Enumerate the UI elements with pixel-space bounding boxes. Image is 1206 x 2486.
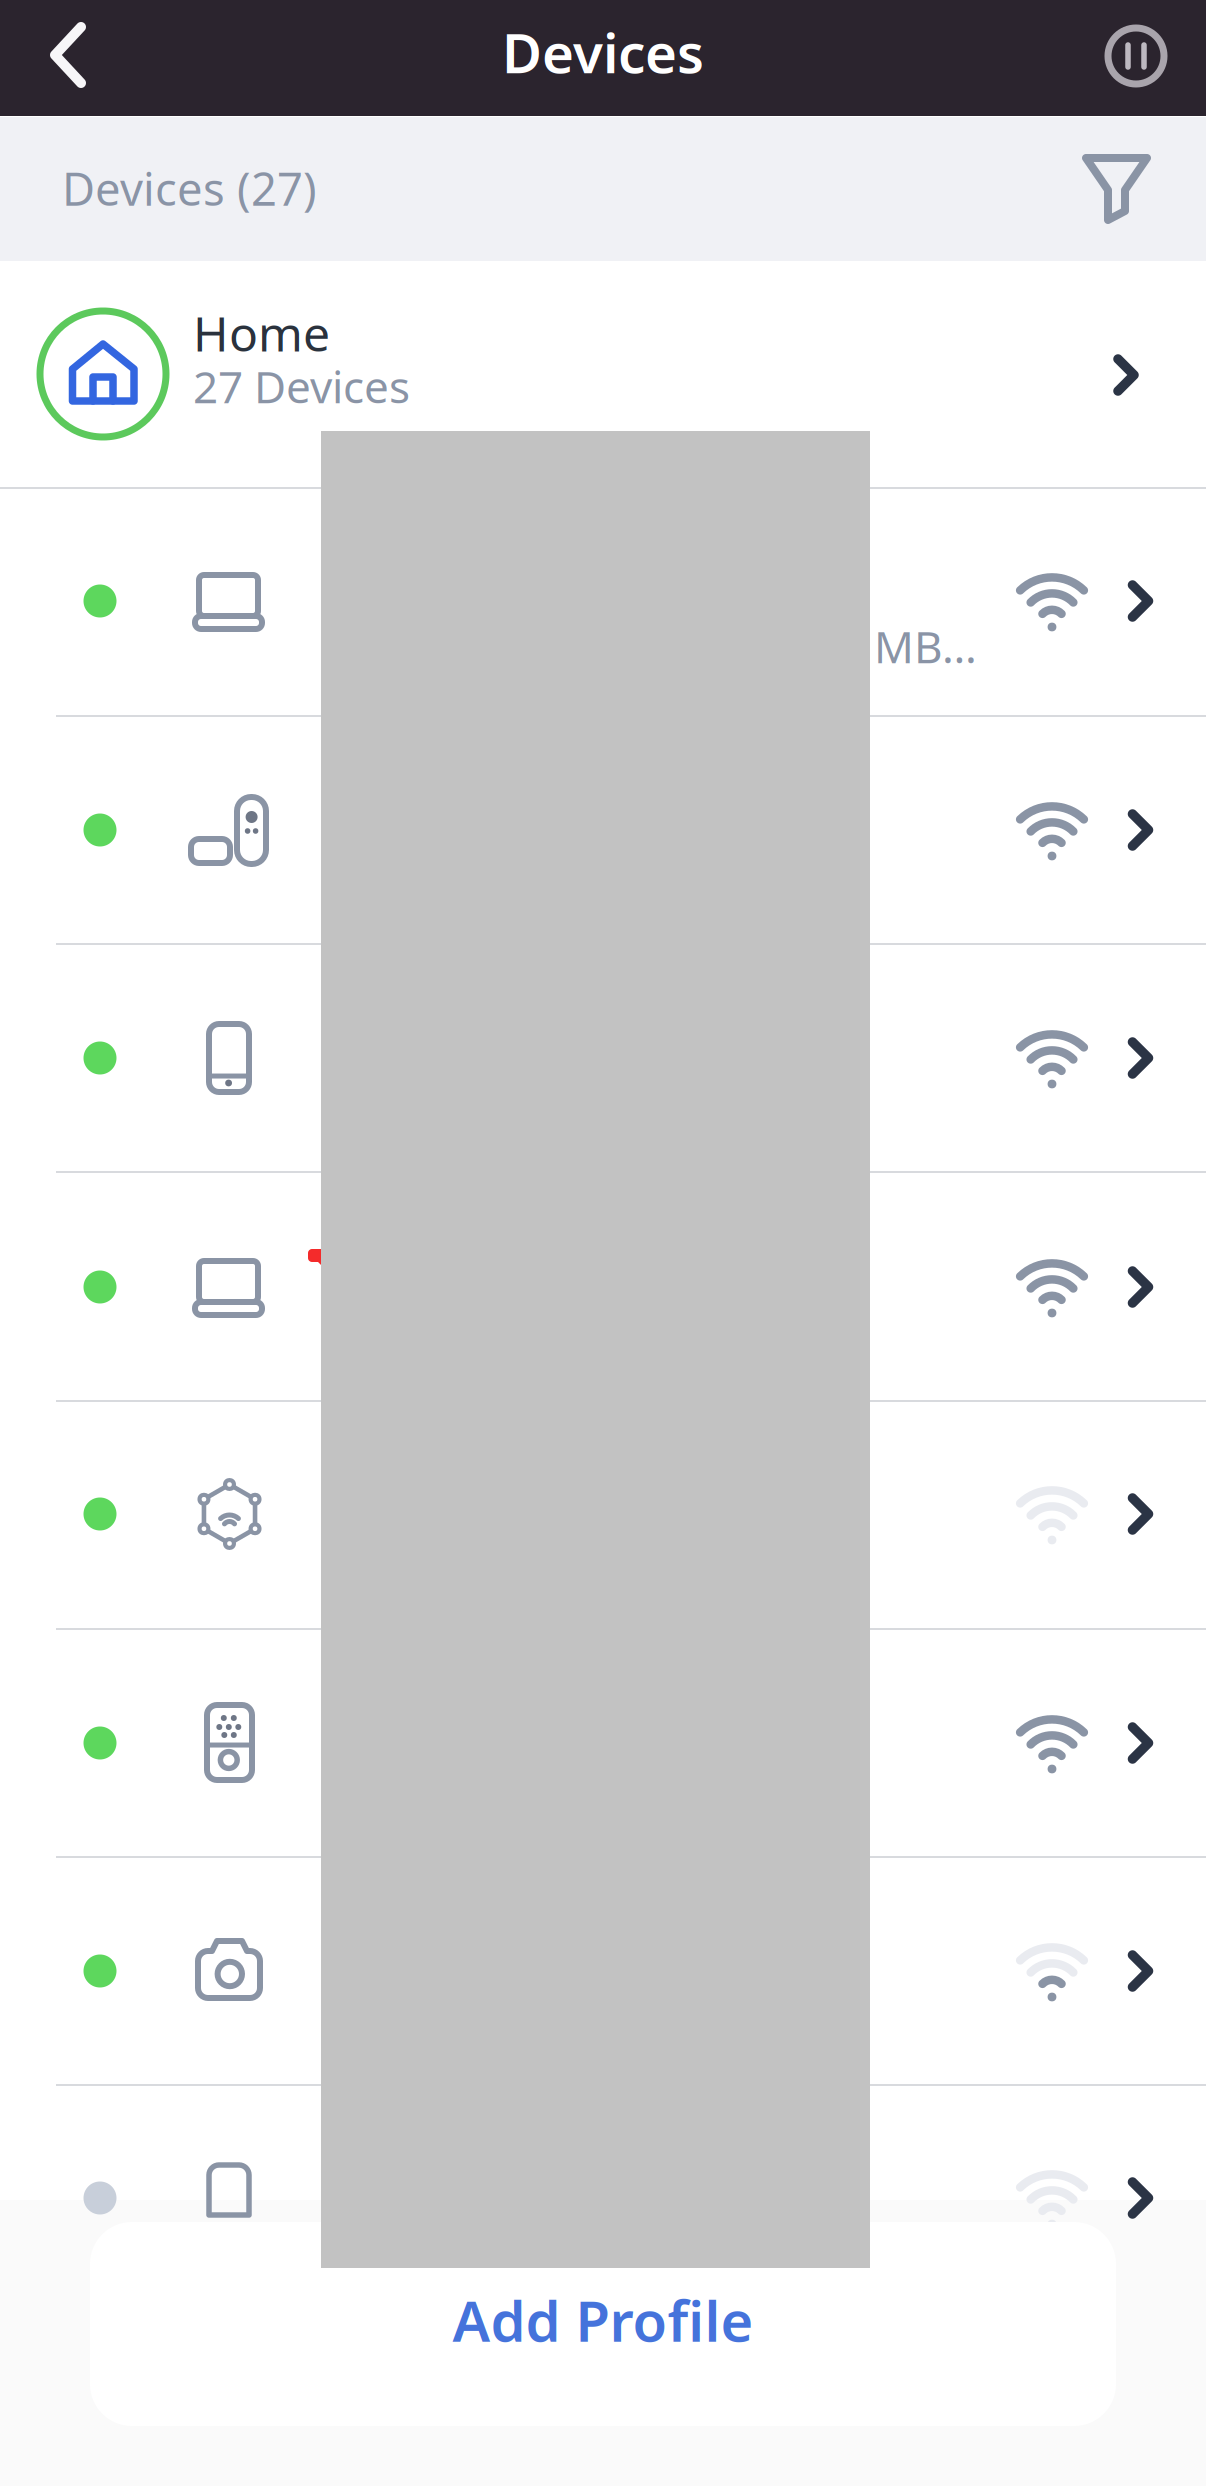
staticText: Add Profile [452, 2283, 753, 2357]
staticText: Devices [502, 16, 704, 88]
staticText: 27 Devices [193, 357, 410, 415]
button[interactable]: Mesh access point, online, no signal [0, 0, 1206, 2486]
button[interactable]: Laptop, online, strong signal [0, 0, 1206, 2486]
button[interactable]: Phone, online, strong signal [0, 0, 1206, 2486]
staticText: Devices (27) [62, 158, 317, 218]
button[interactable]: Add Profile [0, 0, 1206, 2486]
button[interactable]: Back [0, 0, 1206, 2486]
button[interactable]: Filter devices [0, 0, 1206, 2486]
button[interactable]: Pause internet [0, 0, 1206, 2486]
staticText: Home [193, 301, 330, 365]
button[interactable]: Tablet, offline [0, 0, 1206, 2486]
staticText: MB… [874, 617, 977, 675]
button[interactable]: Laptop, online, strong signal [0, 0, 1206, 2486]
button[interactable]: Apple TV, online, strong signal [0, 0, 1206, 2486]
button[interactable]: Camera, online, weak signal [0, 0, 1206, 2486]
button[interactable]: Home, 27 Devices [0, 0, 1206, 2486]
button[interactable]: Smart lock, online, strong signal [0, 0, 1206, 2486]
